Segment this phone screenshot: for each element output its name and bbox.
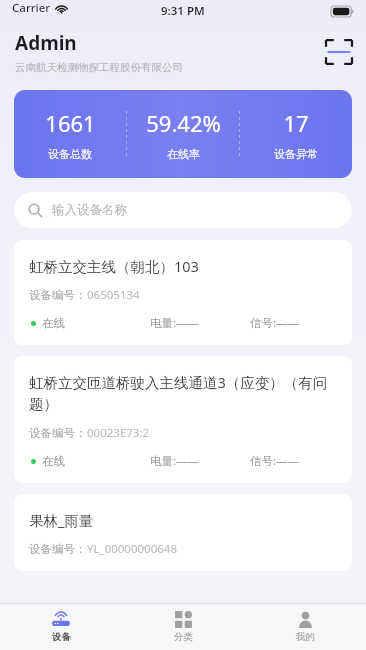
staticText: 果林_雨量 (29, 510, 94, 530)
staticText: 设备编号： (29, 288, 87, 302)
staticText: 在线率 (167, 147, 200, 161)
button[interactable]: 虹桥立交主线（朝北）103 (14, 240, 352, 345)
button[interactable]: 输入设备名称 (14, 192, 352, 228)
staticText: 虹桥立交匝道桥驶入主线通道3（应变）（有问题） (29, 372, 337, 414)
staticText: YL_00000000648 (87, 541, 177, 557)
button[interactable]: 虹桥立交匝道桥驶入主线通道3（应变）（有问题） (14, 356, 352, 483)
button[interactable]: 我的 (244, 604, 366, 650)
button[interactable]: 分类 (122, 604, 244, 650)
staticText: Carrier (12, 0, 51, 16)
staticText: 06505134 (87, 287, 140, 303)
staticText: 输入设备名称 (52, 202, 127, 218)
staticText: 59.42% (146, 108, 221, 138)
staticText: 我的 (296, 631, 315, 643)
staticText: 虹桥立交主线（朝北）103 (29, 256, 199, 276)
staticText: 信号:—— (250, 453, 300, 469)
staticText: Admin (15, 30, 77, 56)
button[interactable]: 设备 (0, 604, 122, 650)
staticText: 17 (283, 108, 309, 138)
button[interactable]: 果林_雨量 (14, 494, 352, 571)
staticText: 电量:—— (150, 315, 200, 331)
staticText: 设备编号： (29, 542, 87, 556)
staticText: 云南航天检测物探工程股份有限公司 (15, 61, 183, 74)
staticText: 在线 (42, 454, 65, 468)
staticText: 电量:—— (150, 453, 200, 469)
staticText: 9:31 PM (161, 3, 205, 19)
staticText: 在线 (42, 316, 65, 330)
staticText: 设备 (52, 631, 71, 643)
staticText: 信号:—— (250, 315, 300, 331)
staticText: 设备异常 (274, 147, 318, 161)
staticText: 设备编号： (29, 426, 87, 440)
staticText: 00023E73:2 (87, 425, 150, 441)
button[interactable]: Scan QR code (326, 39, 352, 65)
staticText: 分类 (174, 631, 193, 643)
staticText: 设备总数 (48, 147, 92, 161)
staticText: 1661 (45, 108, 96, 138)
